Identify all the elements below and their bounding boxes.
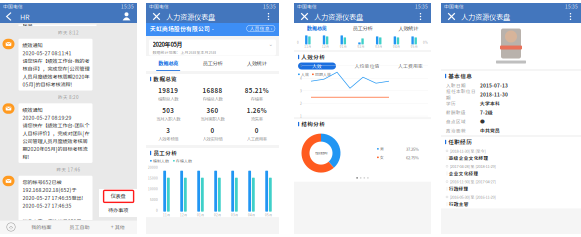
button[interactable]: Close [150, 10, 163, 23]
staticText: 人力资源仪表盘 [166, 11, 215, 22]
staticText: ● [480, 118, 485, 125]
staticText: 编制人数 [153, 158, 169, 164]
staticText: 数据总览 [153, 75, 177, 83]
staticText: 12月 [322, 44, 329, 49]
staticText: 员工分析 [352, 24, 372, 32]
staticText: 我的档案 [31, 223, 51, 231]
button[interactable]: Close [445, 10, 458, 23]
staticText: 0 [300, 126, 302, 131]
staticText: 仪表盘 [110, 192, 125, 200]
staticText: 中国电信 [297, 3, 317, 10]
staticText: 编制总人数 [158, 96, 178, 102]
staticText: 当月离职人数 [200, 116, 224, 122]
staticText: 员工自助 [69, 223, 89, 231]
button[interactable]: 仪表盘 [99, 189, 137, 203]
staticText: 担任本职位日期 [446, 88, 476, 101]
button[interactable]: More [414, 10, 427, 23]
staticText: 2020-05-27 08:11:41 [22, 49, 71, 57]
button[interactable]: 待办事项 [99, 203, 137, 217]
button[interactable]: 我的档案 [22, 220, 60, 234]
button[interactable]: 员工自助 [60, 220, 99, 234]
staticText: 核自评】，完成您在[公司管理 [22, 65, 89, 72]
staticText: 盘点区域 [446, 118, 466, 125]
staticText: 基本信息 [448, 72, 472, 80]
button[interactable]: Profile [120, 10, 133, 23]
staticText: 02月 [214, 213, 221, 217]
button[interactable]: 人员信息 › [247, 25, 275, 32]
staticText: 高级企业文化经理 [449, 155, 489, 161]
button[interactable]: 人效 [298, 62, 336, 69]
button[interactable]: Back [4, 10, 17, 23]
staticText: 0 [297, 40, 299, 45]
staticText: 0 [255, 126, 259, 135]
button[interactable]: More [564, 10, 577, 23]
staticText: + 其他 [111, 223, 125, 231]
staticText: 昨天 8:12 [58, 29, 79, 36]
button[interactable]: 数据总览 [146, 56, 190, 71]
button[interactable]: 员工分析 [190, 56, 235, 71]
staticText: 人效统计 [247, 59, 267, 67]
staticText: 19819 [158, 86, 178, 95]
staticText: 被192.168.202.18(652)于 [22, 225, 81, 233]
button[interactable]: Close [298, 10, 311, 23]
staticText: 15000 [148, 176, 158, 180]
staticText: 中国电信 [3, 3, 23, 10]
staticText: 37.25% [406, 146, 419, 152]
staticText: 5 [300, 63, 302, 68]
staticText: 2020-05-27 08:19:29 [22, 114, 71, 121]
button[interactable]: 人效统计 [235, 56, 279, 71]
button[interactable]: 数据总览 [294, 21, 340, 36]
staticText: 2015-07-13 [480, 82, 508, 89]
staticText: 中共党员 [480, 127, 500, 134]
staticText: 0% [423, 40, 428, 45]
staticText: 在编人数 [176, 158, 192, 164]
staticText: 1 [300, 114, 302, 118]
staticText: 62.75% [406, 154, 419, 160]
staticText: 公司管理人员月度绩效考核周 [22, 137, 87, 145]
staticText: 在编总人数 [202, 96, 222, 102]
button[interactable]: 人工费用率 [398, 62, 423, 69]
button[interactable]: More [262, 10, 275, 23]
staticText: 绩效通知 [22, 41, 42, 49]
button[interactable]: + 其他 [99, 220, 137, 234]
staticText: 2020-05-27 17:46:35登出! [22, 233, 83, 237]
staticText: 0 [156, 208, 158, 213]
staticText: 同期人效 [315, 71, 331, 77]
staticText: 当月入职人数 [156, 116, 180, 122]
staticText: 行政经理 [449, 185, 469, 192]
staticText: 15:35 [263, 3, 276, 10]
staticText: 85.21% [245, 86, 269, 95]
staticText: 01月 [197, 213, 204, 217]
staticText: 10000 [148, 187, 158, 191]
button[interactable]: 员工分析 [340, 21, 385, 36]
staticText: 人工费用率 [247, 136, 267, 142]
button[interactable]: 人均单位值 [354, 62, 379, 69]
staticText: 数据总览 [307, 24, 327, 32]
staticText: 员工分析 [153, 149, 177, 157]
staticText: 企业文化经理 [449, 170, 479, 177]
staticText: 女 [380, 154, 384, 160]
staticText: 2018-11-30 [480, 91, 508, 98]
staticText: 人效实际值 [202, 136, 222, 142]
button[interactable]: 人效统计 [385, 21, 431, 36]
staticText: 04月 [393, 44, 400, 49]
staticText: [2016-05-30] 至 [2016-11-29] [450, 194, 496, 200]
staticText: 您的帐号652已被 [22, 178, 61, 186]
staticText: 人效 [301, 71, 309, 77]
button[interactable]: 首页 [0, 220, 22, 234]
staticText: [2017-04-28] 至 [2018-11-29] [450, 163, 496, 169]
staticText: 11月 [304, 44, 311, 49]
staticText: 绩效通知 [22, 106, 42, 113]
staticText: 期2020年05月]的目标考核流 [22, 145, 87, 152]
staticText: 中国电信 [149, 3, 169, 10]
staticText: 行政主管 [449, 201, 469, 207]
staticText: 人力资源仪表盘 [461, 11, 510, 22]
staticText: 03月 [231, 213, 238, 217]
staticText: 人均单位值 [354, 62, 379, 69]
staticText: 薪酬职级 [446, 109, 466, 116]
staticText: 2 [300, 101, 302, 106]
staticText: [2016-11-30] 至 [2017-04-27] [450, 179, 496, 184]
staticText: 学历 [446, 100, 456, 107]
staticText: 员工分析 [202, 59, 222, 67]
staticText: 01月 [340, 44, 347, 49]
